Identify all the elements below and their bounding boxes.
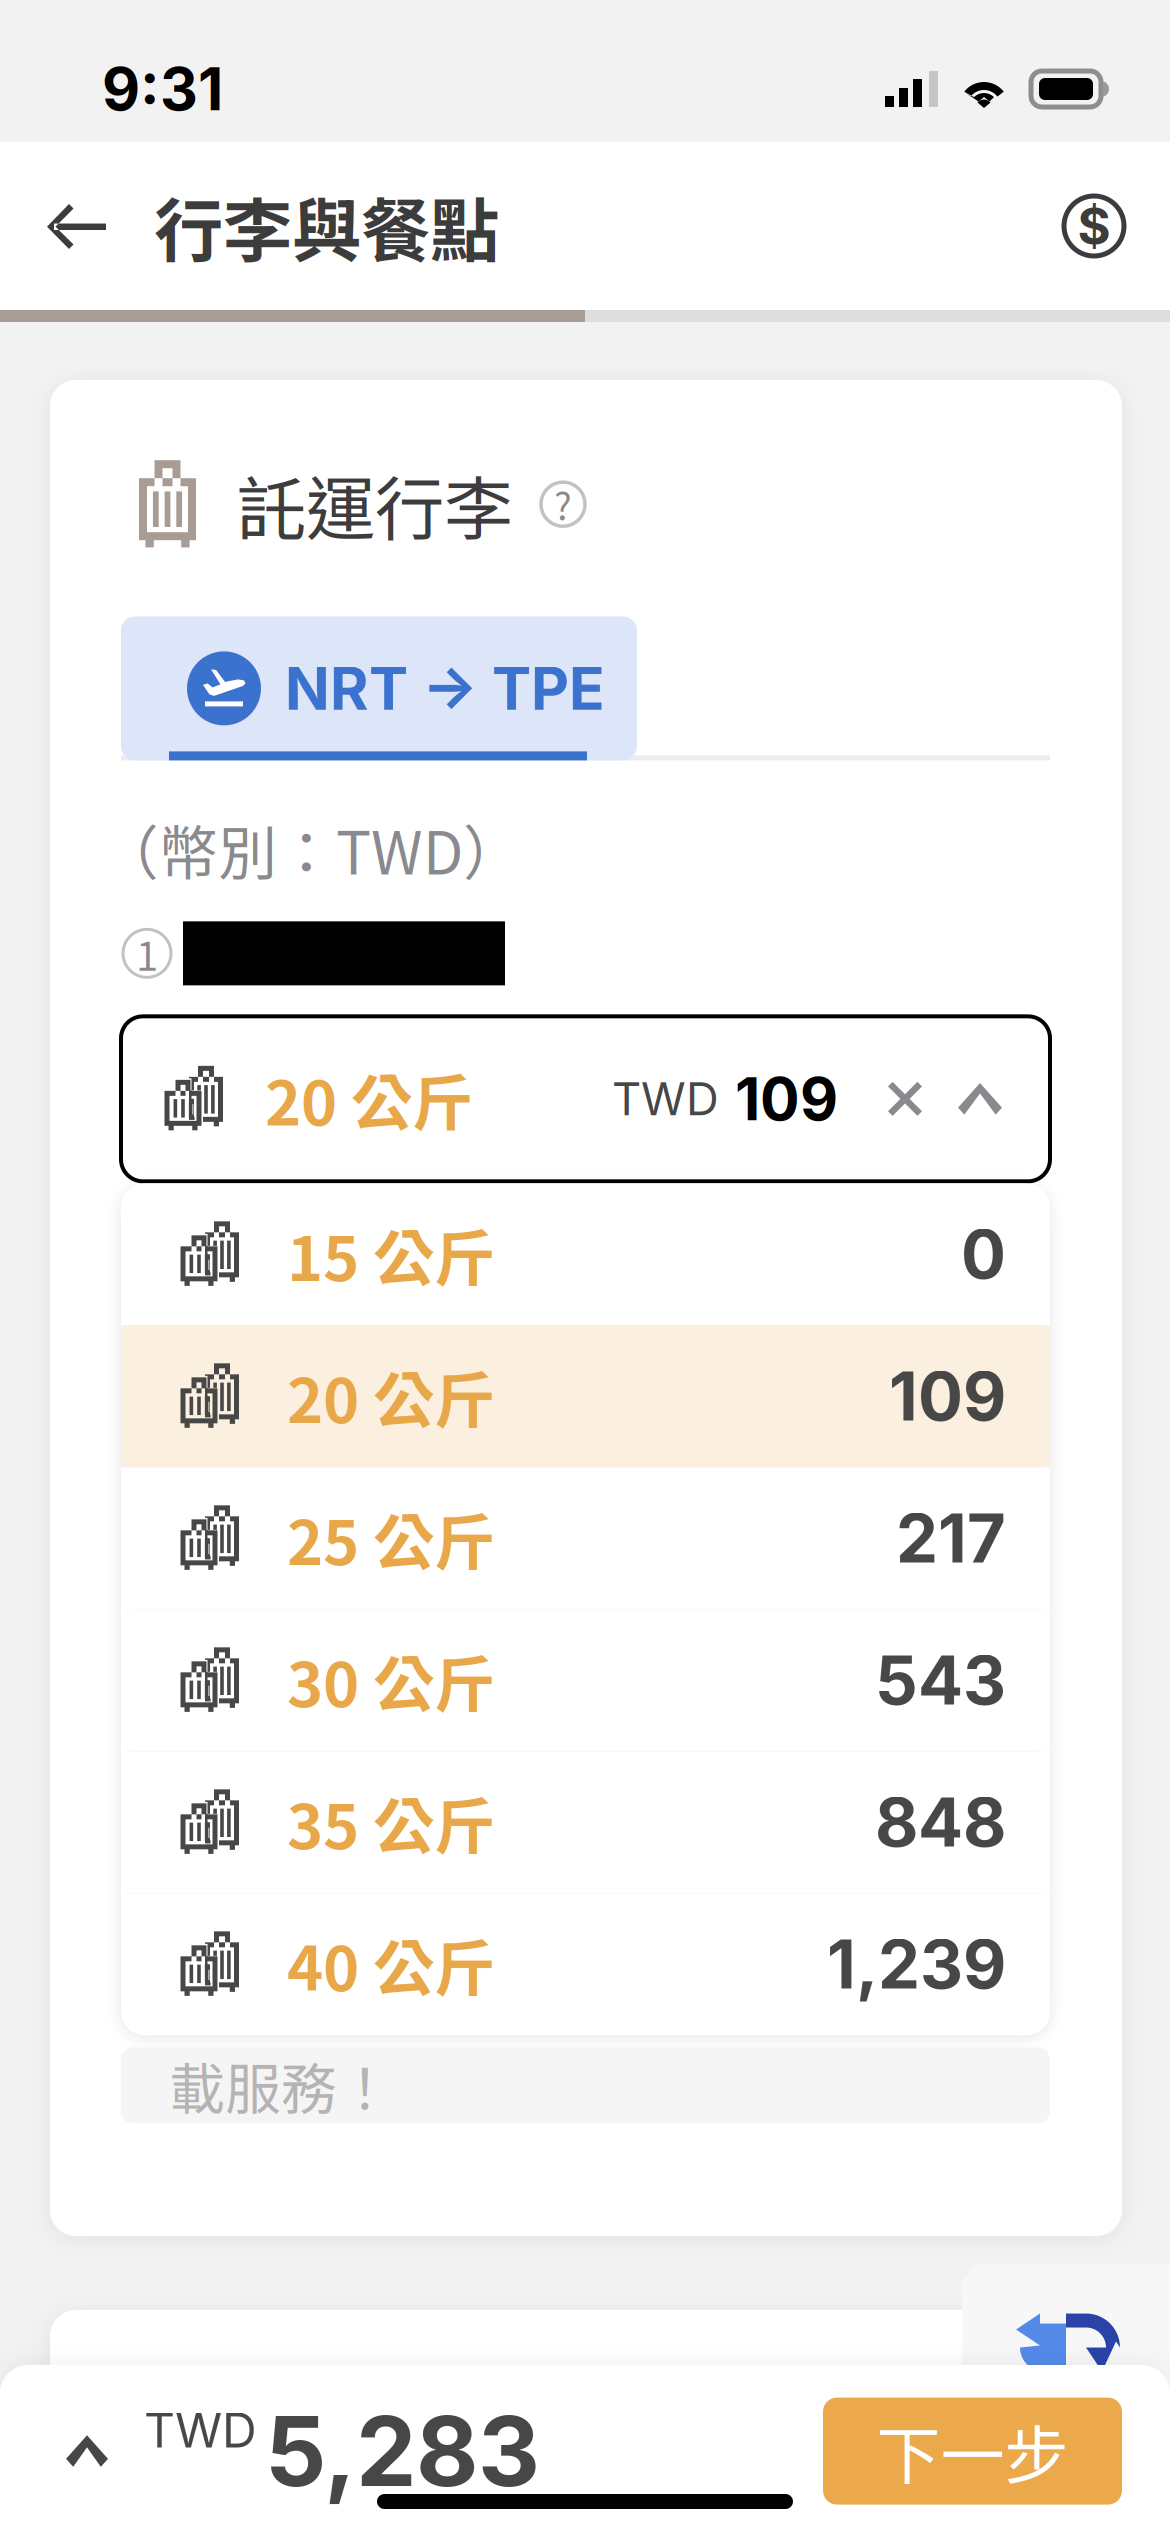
button[interactable]: 下一步 [823, 2398, 1122, 2505]
staticText: 9:31 [102, 53, 223, 124]
staticText: $ [1077, 195, 1110, 257]
staticText: 行李與餐點 [154, 176, 499, 276]
staticText: 543 [875, 1640, 1006, 1721]
button[interactable]: 40 公斤 [121, 1893, 1050, 2035]
staticText: 109 [889, 1356, 1006, 1437]
staticText: 5,283 [265, 2393, 540, 2509]
staticText: 15 公斤 [287, 1210, 495, 1299]
staticText: 848 [875, 1782, 1006, 1863]
staticText: 1 [136, 924, 158, 982]
staticText: 35 公斤 [287, 1778, 495, 1867]
button[interactable]: 35 公斤 [121, 1751, 1050, 1893]
staticText: ? [554, 477, 572, 531]
staticText: 1,239 [827, 1924, 1006, 2005]
button[interactable]: Expand price breakdown [50, 2419, 124, 2483]
staticText: TWD [612, 1071, 719, 1126]
staticText: 30 公斤 [287, 1636, 495, 1725]
staticText: NRT → TPE [285, 653, 605, 724]
staticText: 0 [961, 1214, 1006, 1295]
button[interactable]: Back [22, 173, 132, 279]
button[interactable]: NRT → TPE [121, 616, 637, 760]
button[interactable]: 25 公斤 [121, 1467, 1050, 1609]
button[interactable]: 20 公斤 [121, 1016, 1050, 1181]
staticText: TWD [144, 2401, 257, 2459]
staticText: 20 公斤 [287, 1352, 495, 1441]
button[interactable]: 20 公斤 [121, 1325, 1050, 1467]
staticText: 載服務！ [169, 2045, 393, 2126]
staticText: 20 公斤 [265, 1054, 473, 1143]
button[interactable]: Price details [1040, 170, 1148, 282]
staticText: 下一步 [876, 2405, 1068, 2497]
staticText: 40 公斤 [287, 1920, 495, 2009]
staticText: 託運行李 [237, 454, 513, 554]
staticText: （幣別：TWD） [100, 806, 522, 891]
staticText: 217 [896, 1498, 1006, 1579]
staticText: 25 公斤 [287, 1494, 495, 1583]
button[interactable]: 30 公斤 [121, 1609, 1050, 1751]
staticText: 109 [735, 1063, 838, 1134]
button[interactable]: Help [539, 480, 587, 528]
button[interactable]: 15 公斤 [121, 1183, 1050, 1325]
